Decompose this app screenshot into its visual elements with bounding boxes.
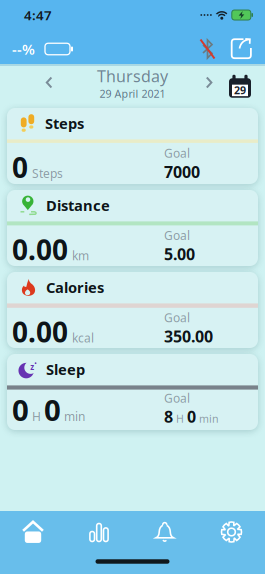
staticText: 350.00 <box>164 325 213 347</box>
button[interactable]: Notifications <box>132 515 198 549</box>
staticText: min <box>199 412 219 426</box>
button[interactable]: Choose date <box>227 71 252 98</box>
button[interactable]: Settings <box>198 515 265 549</box>
staticText: Steps <box>45 114 84 133</box>
staticText: 5.00 <box>164 243 195 264</box>
staticText: min <box>64 408 85 424</box>
staticText: --% <box>12 39 35 59</box>
staticText: Goal <box>164 310 190 325</box>
button[interactable]: Home <box>0 515 66 549</box>
staticText: Goal <box>164 145 190 161</box>
staticText: Goal <box>164 390 190 406</box>
staticText: 7000 <box>164 161 200 182</box>
staticText: 0 <box>12 390 29 429</box>
staticText: kcal <box>72 330 94 346</box>
button[interactable]: Statistics <box>66 515 132 549</box>
staticText: Distance <box>46 196 110 215</box>
button[interactable]: Previous day <box>39 72 61 94</box>
staticText: H <box>176 412 184 426</box>
staticText: Calories <box>46 278 104 297</box>
staticText: z <box>30 361 34 372</box>
button[interactable]: Next day <box>199 72 221 94</box>
staticText: Thursday <box>97 65 168 86</box>
staticText: Steps <box>32 165 63 181</box>
staticText: 0 <box>187 406 196 427</box>
staticText: H <box>32 408 41 424</box>
staticText: 0.00 <box>12 313 68 350</box>
staticText: Goal <box>164 227 190 243</box>
staticText: 0.00 <box>12 231 68 268</box>
staticText: 0 <box>12 149 28 186</box>
staticText: 8 <box>164 406 173 427</box>
staticText: 29 April 2021 <box>99 86 165 101</box>
button[interactable]: Share <box>229 37 254 61</box>
staticText: km <box>72 248 89 264</box>
staticText: 29 <box>234 83 246 97</box>
staticText: 4:47 <box>24 6 52 24</box>
staticText: 0 <box>44 390 61 429</box>
staticText: Sleep <box>46 360 85 379</box>
